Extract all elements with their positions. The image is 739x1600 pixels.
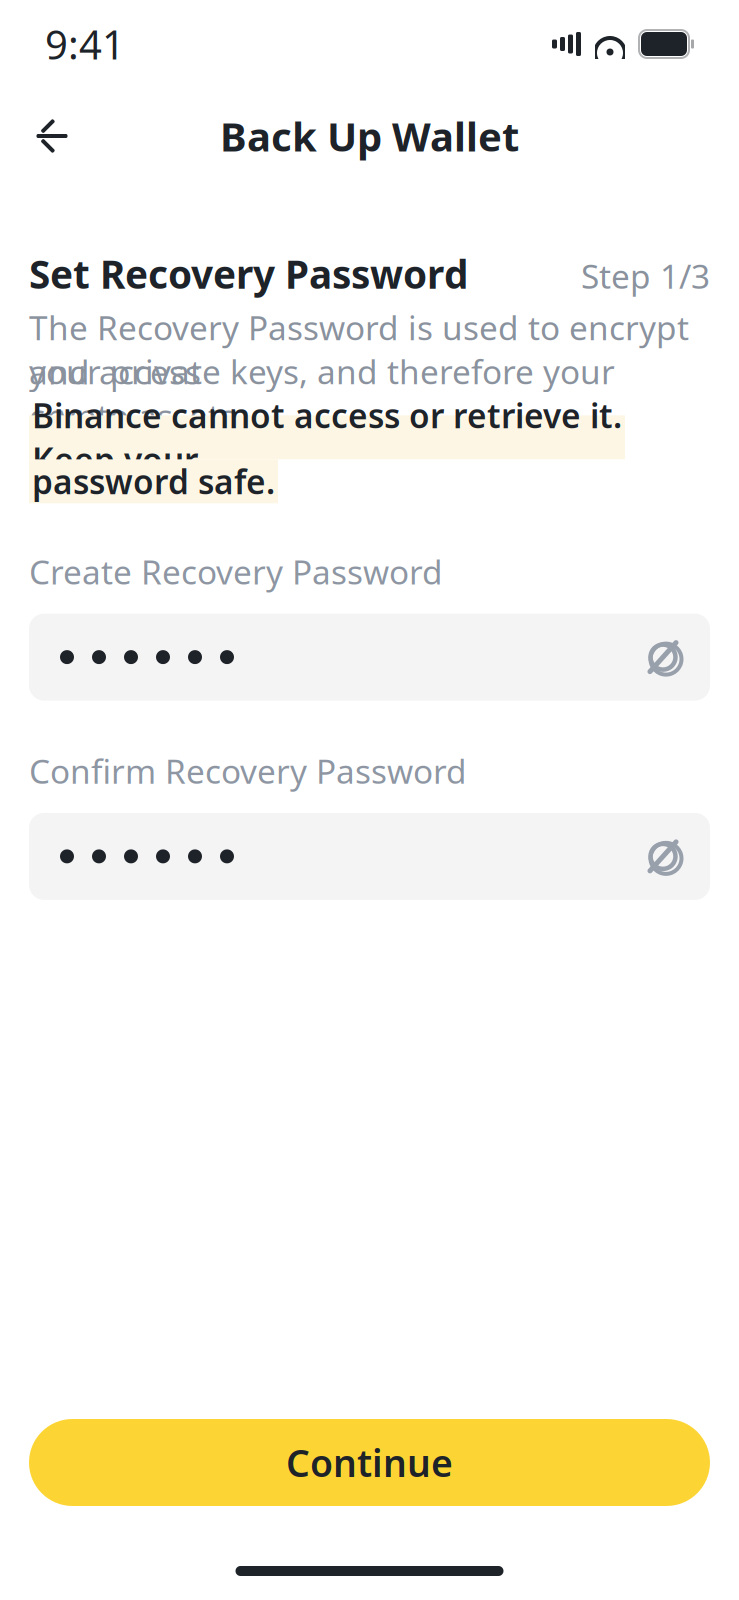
staticText: 9:41 bbox=[45, 17, 125, 70]
staticText: Binance cannot access or retrieve it. Ke… bbox=[32, 393, 622, 482]
staticText: Set Recovery Password bbox=[29, 248, 468, 299]
button[interactable]: Show password bbox=[636, 630, 690, 684]
staticText: Step 1/3 bbox=[581, 254, 710, 298]
button[interactable]: Show password bbox=[636, 829, 690, 883]
staticText: Continue bbox=[286, 1438, 453, 1487]
staticText: password safe. bbox=[32, 459, 275, 503]
staticText: Confirm Recovery Password bbox=[29, 749, 467, 793]
staticText: your private keys, and therefore your cr… bbox=[29, 349, 615, 438]
staticText: Back Up Wallet bbox=[220, 109, 519, 162]
button[interactable]: Back bbox=[22, 108, 78, 164]
staticText: Create Recovery Password bbox=[29, 549, 443, 594]
staticText: The Recovery Password is used to encrypt… bbox=[29, 305, 689, 394]
button[interactable]: Continue bbox=[29, 1419, 710, 1506]
